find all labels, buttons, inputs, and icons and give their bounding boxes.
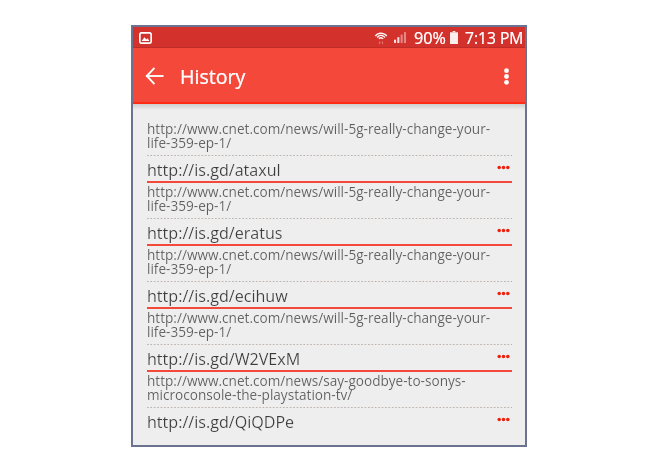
other: Options <box>496 165 512 170</box>
staticText: http://is.gd/W2VExM <box>147 348 301 370</box>
staticText: http://is.gd/eratus <box>147 222 283 244</box>
button[interactable]: http://www.cnet.com/news/will-5g-really-… <box>133 247 525 310</box>
staticText: http://is.gd/QiQDPe <box>147 411 295 433</box>
button[interactable]: http://www.cnet.com/news/will-5g-really-… <box>133 184 525 247</box>
other: Options <box>496 291 512 296</box>
staticText: History <box>180 63 246 90</box>
button[interactable]: Back <box>135 57 173 95</box>
other: Options <box>496 354 512 359</box>
button[interactable]: http://www.cnet.com/news/say-goodbye-to-… <box>133 373 525 436</box>
other: Options <box>496 228 512 233</box>
staticText: http://www.cnet.com/news/will-5g-really-… <box>147 119 512 152</box>
other: Options <box>496 417 512 422</box>
button[interactable]: More options <box>487 57 525 95</box>
staticText: 7:13 PM <box>465 27 524 48</box>
staticText: http://is.gd/ecihuw <box>147 285 288 307</box>
staticText: http://www.cnet.com/news/will-5g-really-… <box>147 308 512 341</box>
button[interactable]: http://www.cnet.com/news/will-5g-really-… <box>133 121 525 184</box>
button[interactable]: http://www.cnet.com/news/will-5g-really-… <box>133 310 525 373</box>
staticText: http://www.cnet.com/news/will-5g-really-… <box>147 182 512 215</box>
staticText: http://www.cnet.com/news/say-goodbye-to-… <box>147 371 512 404</box>
staticText: 90% <box>414 27 446 48</box>
staticText: http://is.gd/ataxul <box>147 159 281 181</box>
staticText: http://www.cnet.com/news/will-5g-really-… <box>147 245 512 278</box>
